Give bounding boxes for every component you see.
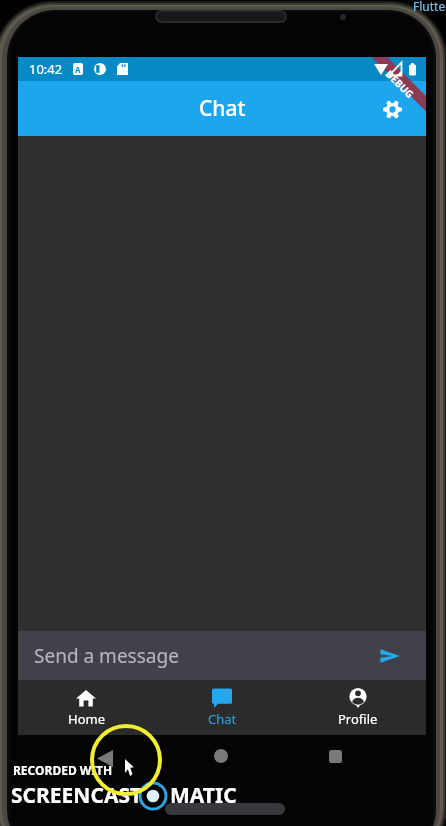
staticText: A <box>75 64 81 75</box>
button[interactable]: Recents <box>321 742 349 770</box>
staticText: DEBUG <box>383 67 417 101</box>
button[interactable]: Chat <box>154 680 290 735</box>
button[interactable]: Back <box>91 744 119 772</box>
staticText: Profile <box>338 710 378 728</box>
button[interactable]: Settings <box>372 89 412 129</box>
staticText: Send a message <box>34 643 179 669</box>
staticText: Flutter <box>413 0 446 14</box>
staticText: Home <box>68 710 105 728</box>
staticText: 10:42 <box>29 60 63 78</box>
button[interactable]: Home <box>18 680 154 735</box>
button[interactable]: Send <box>372 638 408 674</box>
button[interactable]: Home <box>207 742 235 770</box>
staticText: MATIC <box>170 781 237 810</box>
staticText: Chat <box>208 710 237 728</box>
staticText: Chat <box>199 94 246 123</box>
staticText: SCREENCAST <box>11 781 143 810</box>
button[interactable]: Profile <box>290 680 426 735</box>
staticText: RECORDED WITH <box>13 762 113 778</box>
